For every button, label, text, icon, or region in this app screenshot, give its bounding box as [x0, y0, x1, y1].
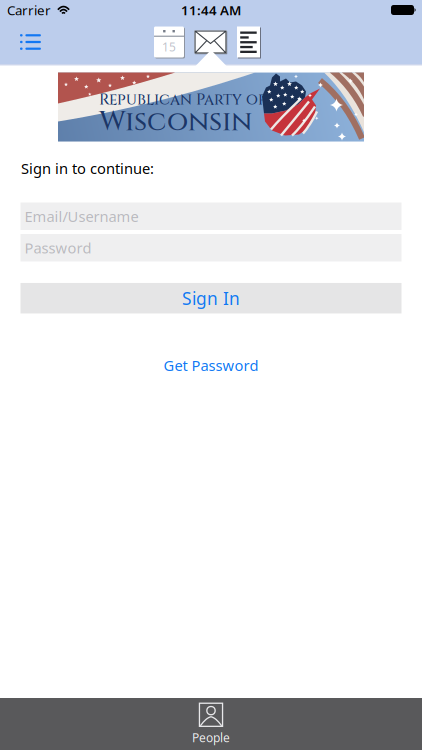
staticText: Carrier	[7, 1, 51, 19]
button[interactable]: Menu	[0, 34, 41, 50]
button[interactable]: Documents	[236, 26, 260, 58]
staticText: People	[192, 729, 230, 745]
staticText: 15	[162, 39, 176, 55]
button[interactable]: Get Password	[163, 355, 258, 375]
staticText: Get Password	[163, 355, 258, 375]
staticText: Email/Username	[24, 206, 138, 226]
staticText: 11:44 AM	[181, 1, 241, 19]
staticText: Wisconsin	[99, 103, 252, 140]
button[interactable]: People	[192, 702, 230, 745]
button[interactable]: Calendar	[153, 26, 184, 58]
staticText: Republican Party of	[99, 89, 266, 110]
staticText: Password	[24, 238, 91, 257]
staticText: Sign In	[182, 287, 240, 310]
button[interactable]: Messages	[194, 30, 226, 53]
button[interactable]: Sign In	[20, 283, 401, 313]
staticText: Sign in to continue:	[21, 158, 154, 178]
